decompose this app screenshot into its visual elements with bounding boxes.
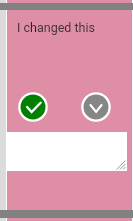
button[interactable]: Accept bbox=[18, 92, 48, 122]
button[interactable]: Expand bbox=[81, 92, 111, 122]
staticText: I changed this bbox=[17, 20, 95, 35]
button[interactable]: Text input bbox=[6, 132, 127, 171]
